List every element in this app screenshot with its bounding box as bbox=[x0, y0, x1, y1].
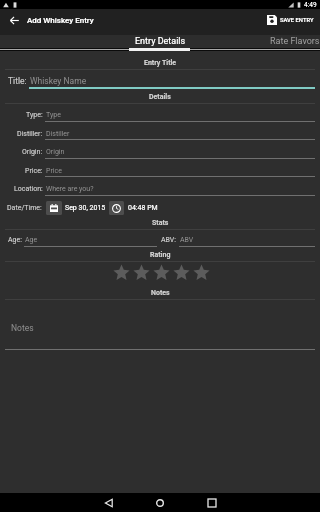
staticText: Entry Title bbox=[144, 59, 177, 67]
staticText: Stats bbox=[152, 219, 169, 227]
button[interactable]: Rate 4 stars bbox=[171, 262, 191, 282]
button[interactable]: Home bbox=[150, 493, 169, 512]
button[interactable]: Navigate up bbox=[3, 9, 26, 31]
button[interactable]: Back bbox=[99, 493, 118, 512]
staticText: Price bbox=[46, 167, 62, 175]
button[interactable]: Type: bbox=[0, 109, 315, 120]
staticText: Location: bbox=[14, 185, 43, 193]
staticText: Sep 30, 2015 bbox=[65, 204, 106, 212]
staticText: Notes bbox=[11, 323, 34, 333]
staticText: Entry Details bbox=[135, 36, 186, 47]
button[interactable]: ABV: bbox=[0, 234, 315, 245]
button[interactable]: Title: bbox=[0, 74, 315, 88]
button[interactable]: Pick time bbox=[109, 201, 124, 215]
staticText: Type: bbox=[26, 111, 43, 119]
staticText: ABV: bbox=[161, 236, 176, 244]
button[interactable]: Recent apps bbox=[202, 493, 221, 512]
button[interactable]: Price: bbox=[0, 165, 315, 176]
button[interactable]: Pick date bbox=[46, 201, 62, 215]
staticText: 04:48 PM bbox=[128, 204, 158, 212]
button[interactable]: Location: bbox=[0, 183, 315, 194]
button[interactable]: 04:48 PM bbox=[128, 202, 158, 214]
button[interactable]: Age: bbox=[0, 234, 157, 245]
staticText: Distiller bbox=[46, 130, 70, 138]
staticText: SAVE ENTRY bbox=[280, 17, 314, 24]
staticText: Price: bbox=[25, 167, 43, 175]
button[interactable]: Rate 5 stars bbox=[191, 262, 211, 282]
staticText: Whiskey Name bbox=[30, 76, 87, 86]
staticText: Date/Time: bbox=[7, 204, 42, 212]
staticText: Type bbox=[46, 111, 61, 119]
staticText: Where are you? bbox=[46, 185, 94, 193]
button[interactable]: Rate 2 stars bbox=[131, 262, 151, 282]
button[interactable]: SAVE ENTRY bbox=[261, 9, 320, 31]
staticText: Rating bbox=[150, 251, 171, 259]
button[interactable]: Rate Flavors bbox=[245, 35, 320, 48]
button[interactable]: Rate 3 stars bbox=[151, 262, 171, 282]
staticText: ABV bbox=[180, 236, 194, 244]
staticText: Distiller: bbox=[17, 130, 43, 138]
staticText: Rate Flavors bbox=[270, 36, 320, 47]
staticText: 4:49 bbox=[304, 1, 317, 9]
staticText: Origin bbox=[46, 148, 65, 156]
staticText: Title: bbox=[8, 76, 27, 86]
button[interactable]: Entry Details bbox=[110, 35, 210, 48]
button[interactable]: Rate 1 stars bbox=[111, 262, 131, 282]
button[interactable]: Origin: bbox=[0, 146, 315, 157]
staticText: Details bbox=[149, 93, 171, 101]
staticText: Origin: bbox=[22, 148, 43, 156]
button[interactable]: Notes bbox=[11, 321, 34, 334]
staticText: Add Whiskey Entry bbox=[27, 16, 94, 25]
button[interactable]: Sep 30, 2015 bbox=[65, 202, 106, 214]
staticText: Notes bbox=[151, 289, 170, 297]
staticText: Age bbox=[25, 236, 38, 244]
button[interactable]: Distiller: bbox=[0, 128, 315, 139]
staticText: Age: bbox=[8, 236, 22, 244]
